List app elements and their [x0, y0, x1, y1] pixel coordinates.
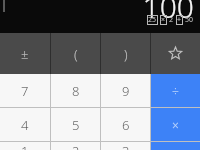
staticText: 4: [21, 116, 29, 134]
button[interactable]: 9: [101, 74, 150, 107]
staticText: 9: [122, 82, 130, 100]
button[interactable]: Favorites: [151, 33, 200, 74]
button[interactable]: Plus minus: [0, 33, 50, 74]
button[interactable]: 3: [101, 142, 150, 150]
button[interactable]: 6: [101, 108, 150, 141]
button[interactable]: Open parenthesis: [51, 33, 100, 74]
staticText: 50: [185, 15, 194, 25]
button[interactable]: Divide: [151, 74, 200, 107]
staticText: (: [74, 45, 78, 63]
button[interactable]: 5: [51, 108, 100, 141]
button[interactable]: 1: [0, 142, 50, 150]
staticText: ×: [172, 117, 179, 133]
staticText: 1: [21, 142, 29, 150]
staticText: 3: [122, 142, 130, 150]
button[interactable]: Close parenthesis: [101, 33, 150, 74]
staticText: +: [177, 15, 182, 25]
staticText: ×: [161, 15, 166, 25]
staticText: 5: [72, 116, 80, 134]
staticText: 6: [122, 116, 130, 134]
button[interactable]: 4: [0, 108, 50, 141]
button[interactable]: 7: [0, 74, 50, 107]
staticText: ±: [21, 45, 29, 63]
staticText: 2: [169, 15, 174, 25]
button[interactable]: 8: [51, 74, 100, 107]
staticText: 25: [148, 15, 157, 25]
staticText: 7: [21, 82, 29, 100]
staticText: ÷: [172, 83, 179, 99]
staticText: 8: [72, 82, 80, 100]
button[interactable]: Multiply: [151, 108, 200, 141]
button[interactable]: 2: [51, 142, 100, 150]
staticText: 2: [72, 142, 80, 150]
staticText: ): [124, 45, 128, 63]
staticText: 100: [142, 0, 194, 19]
